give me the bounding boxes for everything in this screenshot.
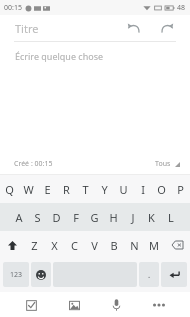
button[interactable]: L bbox=[161, 203, 180, 231]
button[interactable]: B bbox=[104, 231, 124, 259]
staticText: D bbox=[52, 210, 61, 225]
button[interactable]: P bbox=[171, 175, 190, 203]
staticText: R bbox=[63, 182, 70, 197]
button[interactable]: G bbox=[85, 203, 104, 231]
button[interactable]: Emoji bbox=[31, 262, 51, 287]
button[interactable]: Écrire quelque chose bbox=[0, 42, 190, 154]
button[interactable]: V bbox=[84, 231, 104, 259]
button[interactable]: J bbox=[123, 203, 142, 231]
staticText: N bbox=[130, 238, 139, 253]
button[interactable]: S bbox=[28, 203, 47, 231]
staticText: B bbox=[110, 238, 118, 253]
button[interactable]: I bbox=[133, 175, 152, 203]
button[interactable]: . bbox=[139, 262, 159, 287]
button[interactable]: Checklist bbox=[19, 293, 43, 317]
button[interactable]: Y bbox=[95, 175, 114, 203]
button[interactable]: E bbox=[38, 175, 57, 203]
staticText: 00:15 bbox=[4, 3, 22, 13]
staticText: L bbox=[168, 210, 174, 225]
button[interactable]: Z bbox=[25, 231, 44, 259]
button[interactable]: F bbox=[66, 203, 85, 231]
button[interactable]: N bbox=[124, 231, 144, 259]
button[interactable]: O bbox=[152, 175, 171, 203]
staticText: P bbox=[177, 182, 184, 197]
staticText: I bbox=[141, 182, 145, 197]
button[interactable]: Undo bbox=[120, 15, 146, 41]
button[interactable]: Add image bbox=[62, 293, 86, 317]
staticText: V bbox=[91, 238, 98, 253]
staticText: Créé : 00:15 bbox=[14, 159, 53, 169]
staticText: Écrire quelque chose bbox=[15, 50, 104, 62]
staticText: 123 bbox=[10, 270, 23, 280]
staticText: W bbox=[23, 182, 34, 197]
button[interactable]: M bbox=[144, 231, 164, 259]
button[interactable]: C bbox=[64, 231, 84, 259]
staticText: H bbox=[109, 210, 118, 225]
staticText: Titre bbox=[15, 21, 39, 36]
staticText: F bbox=[73, 210, 79, 225]
staticText: K bbox=[148, 210, 155, 225]
button[interactable]: K bbox=[142, 203, 161, 231]
staticText: Tous bbox=[155, 159, 171, 169]
staticText: J bbox=[131, 210, 135, 225]
staticText: U bbox=[119, 182, 128, 197]
staticText: A bbox=[15, 210, 23, 225]
staticText: M bbox=[149, 238, 159, 253]
button[interactable]: Backspace bbox=[164, 231, 190, 259]
staticText: S bbox=[34, 210, 41, 225]
button[interactable]: Tous bbox=[155, 159, 180, 169]
button[interactable]: Q bbox=[0, 175, 19, 203]
button[interactable]: U bbox=[114, 175, 133, 203]
button[interactable]: 123 bbox=[3, 262, 29, 287]
button[interactable]: T bbox=[76, 175, 95, 203]
button[interactable]: Voice note bbox=[104, 293, 128, 317]
staticText: G bbox=[90, 210, 99, 225]
button[interactable]: R bbox=[57, 175, 76, 203]
staticText: 48 bbox=[177, 3, 186, 13]
staticText: Q bbox=[5, 182, 14, 197]
staticText: Z bbox=[31, 238, 38, 253]
button[interactable]: Shift bbox=[0, 231, 25, 259]
button[interactable]: A bbox=[9, 203, 28, 231]
staticText: O bbox=[157, 182, 166, 197]
staticText: T bbox=[82, 182, 89, 197]
button[interactable]: Redo bbox=[154, 15, 180, 41]
staticText: E bbox=[44, 182, 51, 197]
staticText: C bbox=[71, 238, 78, 253]
button[interactable]: D bbox=[47, 203, 66, 231]
button[interactable]: H bbox=[104, 203, 123, 231]
button[interactable]: X bbox=[44, 231, 64, 259]
staticText: Y bbox=[101, 182, 108, 197]
button[interactable]: Enter bbox=[161, 262, 187, 287]
staticText: X bbox=[51, 238, 58, 253]
staticText: . bbox=[148, 269, 151, 280]
button[interactable]: W bbox=[19, 175, 38, 203]
button[interactable]: More options bbox=[147, 293, 171, 317]
